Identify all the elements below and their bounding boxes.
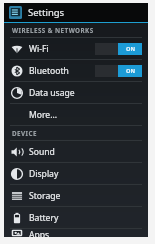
button[interactable]: Settings — [4, 3, 148, 22]
staticText: Battery — [29, 212, 59, 224]
button[interactable]: Sound — [4, 141, 148, 162]
button[interactable]: Apps — [4, 229, 148, 237]
staticText: WIRELESS & NETWORKS — [12, 26, 94, 35]
button[interactable]: Battery — [4, 207, 148, 228]
button[interactable]: Wi-Fi — [4, 38, 148, 59]
staticText: Wi-Fi — [29, 43, 49, 55]
staticText: ON — [126, 67, 135, 75]
staticText: Bluetooth — [29, 65, 69, 77]
button[interactable]: Storage — [4, 185, 148, 206]
staticText: Apps — [29, 229, 50, 237]
button[interactable]: On — [95, 43, 142, 55]
staticText: More... — [29, 109, 58, 121]
other: Settings — [9, 6, 22, 19]
staticText: Data usage — [29, 87, 75, 99]
staticText: Storage — [29, 190, 61, 202]
staticText: Settings — [28, 6, 65, 19]
button[interactable]: Bluetooth — [4, 60, 148, 81]
button[interactable]: On — [95, 65, 142, 77]
button[interactable]: Display — [4, 163, 148, 184]
staticText: Sound — [29, 146, 55, 158]
button[interactable]: More... — [4, 104, 148, 125]
button[interactable]: Data usage — [4, 82, 148, 103]
staticText: Display — [29, 168, 59, 180]
staticText: ON — [126, 45, 135, 53]
staticText: DEVICE — [12, 129, 37, 138]
